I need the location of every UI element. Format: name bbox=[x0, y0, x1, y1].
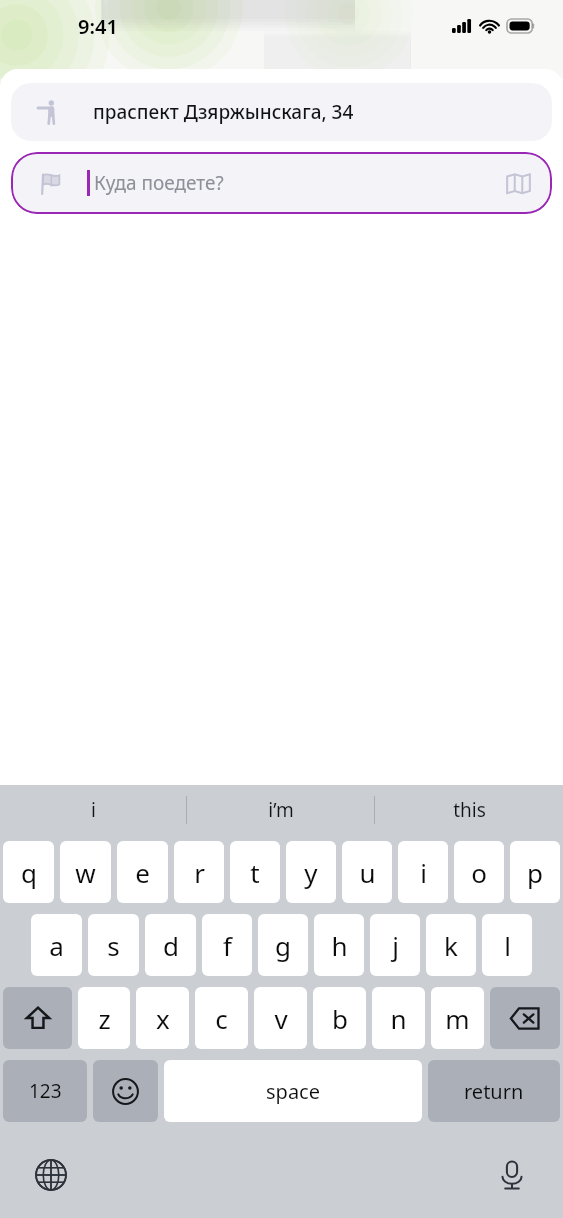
button[interactable]: m bbox=[431, 987, 484, 1049]
staticText: v bbox=[274, 1001, 288, 1036]
button[interactable]: d bbox=[145, 914, 196, 976]
staticText: Куда поедете? bbox=[94, 170, 224, 196]
staticText: h bbox=[331, 928, 348, 963]
staticText: p bbox=[527, 855, 543, 890]
staticText: c bbox=[215, 1001, 228, 1036]
button[interactable]: l bbox=[482, 914, 532, 976]
staticText: m bbox=[445, 1001, 470, 1036]
staticText: a bbox=[49, 928, 64, 963]
button[interactable]: j bbox=[370, 914, 420, 976]
staticText: n bbox=[390, 1001, 407, 1036]
staticText: праспект Дзяржынскага, 34 bbox=[93, 99, 354, 125]
staticText: q bbox=[21, 855, 37, 890]
staticText: s bbox=[107, 928, 120, 963]
button[interactable]: space bbox=[164, 1060, 422, 1122]
button[interactable]: o bbox=[454, 841, 504, 903]
button[interactable]: 123 bbox=[3, 1060, 87, 1122]
staticText: 9:41 bbox=[78, 13, 118, 40]
button[interactable]: w bbox=[60, 841, 111, 903]
button[interactable]: r bbox=[174, 841, 224, 903]
button[interactable]: g bbox=[258, 914, 308, 976]
staticText: b bbox=[332, 1001, 348, 1036]
button[interactable]: u bbox=[342, 841, 392, 903]
button[interactable]: t bbox=[230, 841, 280, 903]
staticText: x bbox=[156, 1001, 170, 1036]
button[interactable]: Dictation bbox=[483, 1146, 541, 1204]
button[interactable]: p bbox=[510, 841, 560, 903]
staticText: e bbox=[135, 855, 150, 890]
button[interactable]: i bbox=[0, 785, 187, 835]
button[interactable]: v bbox=[254, 987, 307, 1049]
staticText: this bbox=[453, 797, 486, 823]
staticText: z bbox=[98, 1001, 111, 1036]
button[interactable]: i’m bbox=[187, 785, 375, 835]
staticText: f bbox=[223, 928, 232, 963]
staticText: space bbox=[266, 1078, 320, 1105]
staticText: i bbox=[420, 855, 427, 890]
button[interactable]: f bbox=[202, 914, 252, 976]
button[interactable]: b bbox=[313, 987, 366, 1049]
button[interactable]: x bbox=[136, 987, 189, 1049]
staticText: i’m bbox=[268, 797, 294, 823]
staticText: d bbox=[163, 928, 179, 963]
button[interactable]: this bbox=[375, 785, 563, 835]
staticText: u bbox=[359, 855, 376, 890]
button[interactable]: i bbox=[398, 841, 448, 903]
button[interactable]: праспект Дзяржынскага, 34 bbox=[11, 83, 552, 141]
staticText: 123 bbox=[29, 1078, 62, 1104]
button[interactable]: z bbox=[78, 987, 130, 1049]
staticText: l bbox=[504, 928, 511, 963]
button[interactable]: Change keyboard language bbox=[22, 1146, 80, 1204]
staticText: o bbox=[471, 855, 487, 890]
button[interactable]: Emoji bbox=[93, 1060, 158, 1122]
button[interactable]: return bbox=[428, 1060, 560, 1122]
button[interactable]: y bbox=[286, 841, 336, 903]
button[interactable]: e bbox=[117, 841, 168, 903]
button[interactable]: a bbox=[31, 914, 82, 976]
button[interactable]: Shift bbox=[3, 987, 72, 1049]
button[interactable]: n bbox=[372, 987, 425, 1049]
staticText: w bbox=[75, 855, 96, 890]
button[interactable]: Backspace bbox=[490, 987, 560, 1049]
staticText: k bbox=[444, 928, 458, 963]
button[interactable]: s bbox=[88, 914, 139, 976]
button[interactable]: h bbox=[314, 914, 364, 976]
button[interactable]: Куда поедете? bbox=[11, 152, 552, 214]
staticText: r bbox=[194, 855, 205, 890]
staticText: y bbox=[304, 855, 318, 890]
staticText: g bbox=[275, 928, 291, 963]
staticText: j bbox=[392, 928, 399, 963]
staticText: i bbox=[91, 797, 96, 823]
button[interactable]: q bbox=[3, 841, 54, 903]
button[interactable]: c bbox=[195, 987, 248, 1049]
staticText: t bbox=[250, 855, 260, 890]
button[interactable]: Choose on map bbox=[494, 159, 542, 207]
button[interactable]: k bbox=[426, 914, 476, 976]
staticText: return bbox=[464, 1078, 524, 1105]
